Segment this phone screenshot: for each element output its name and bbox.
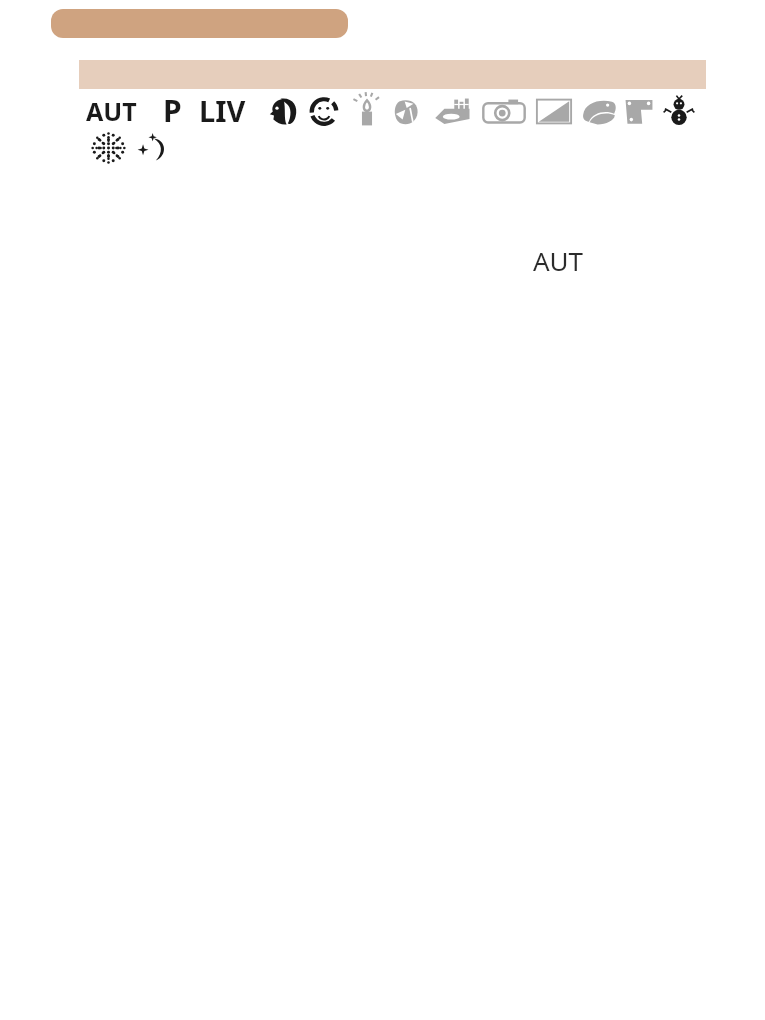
button[interactable]: Smile detection mode: [308, 97, 340, 125]
button[interactable]: AUTO: [86, 94, 148, 124]
staticText: LIVE: [199, 91, 259, 124]
button[interactable]: AUTO: [533, 243, 599, 277]
button[interactable]: Handheld night scene mode: [389, 96, 423, 126]
staticText: P: [163, 90, 182, 124]
staticText: AUTO: [533, 243, 599, 277]
button[interactable]: Fish-eye effect mode: [581, 98, 617, 125]
button[interactable]: Low light mode: [353, 96, 381, 126]
button[interactable]: High contrast monochrome mode: [535, 98, 573, 125]
button[interactable]: Standard camera mode: [482, 98, 526, 124]
button[interactable]: Food mode: [433, 98, 471, 125]
button[interactable]: Starry night mode: [136, 133, 168, 163]
staticText: AUTO: [86, 94, 148, 124]
button[interactable]: P: [163, 90, 187, 124]
button[interactable]: Portrait mode: [268, 97, 298, 125]
button[interactable]: Fireworks mode: [92, 133, 125, 163]
button[interactable]: Snow mode: [663, 95, 695, 126]
button[interactable]: Chapter tab: [51, 9, 348, 38]
button[interactable]: Toy camera effect mode: [623, 97, 655, 126]
button[interactable]: LIVE: [199, 91, 259, 124]
